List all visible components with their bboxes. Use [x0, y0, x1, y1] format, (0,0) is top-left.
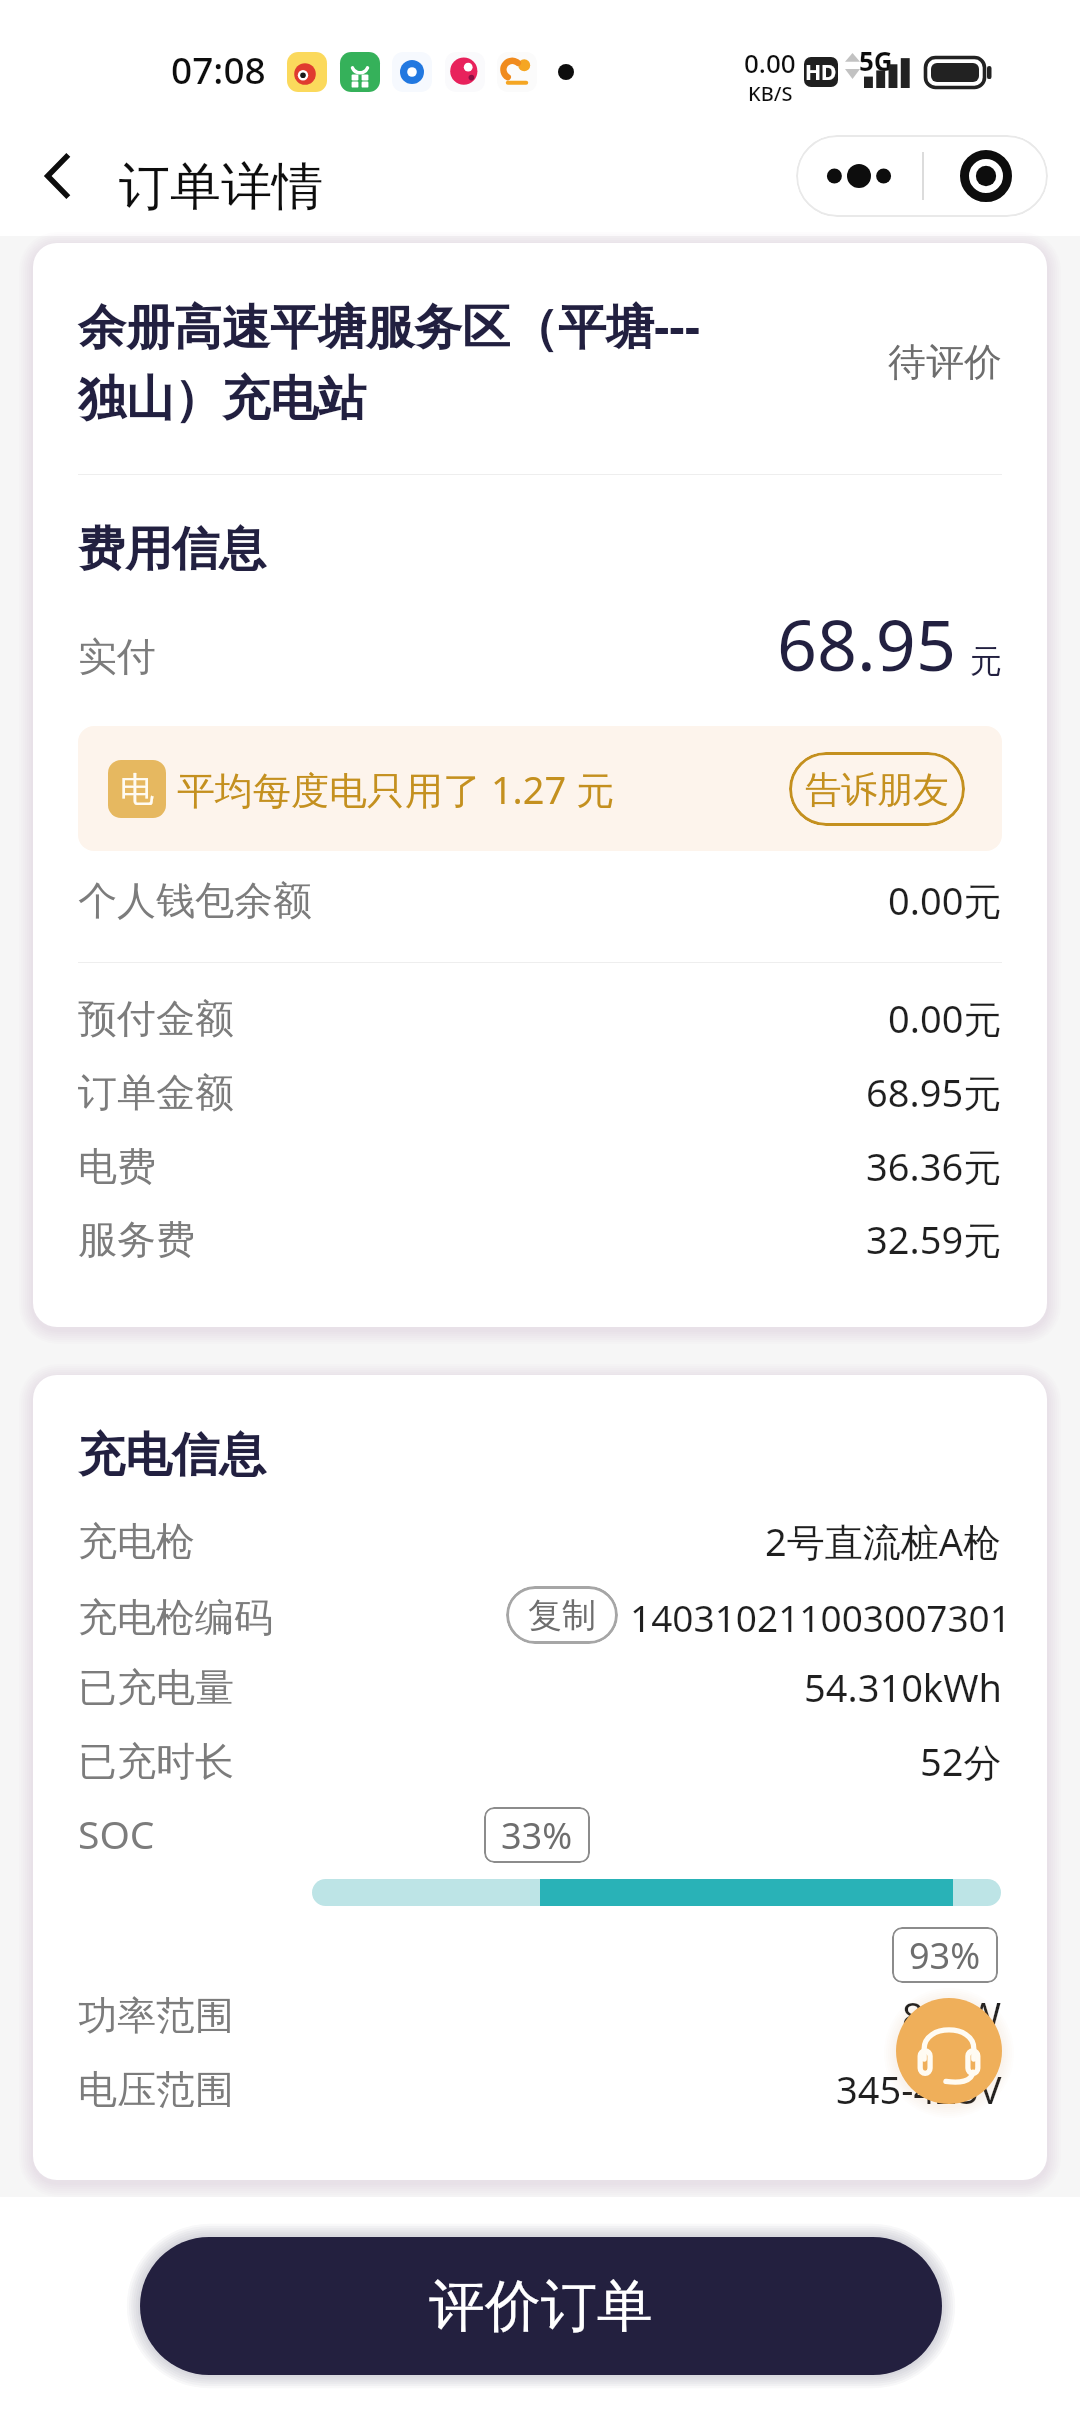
button[interactable]: 告诉朋友: [789, 752, 965, 826]
button[interactable]: Close mini program: [924, 135, 1048, 217]
staticText: 实付: [78, 632, 156, 681]
staticText: 复制: [528, 1594, 596, 1637]
staticText: 服务费: [78, 1215, 195, 1264]
staticText: 已充电量: [78, 1663, 234, 1712]
staticText: 告诉朋友: [805, 767, 949, 812]
staticText: 充电枪: [78, 1517, 195, 1566]
staticText: 2号直流桩A枪: [765, 1515, 1002, 1567]
button[interactable]: 评价订单: [140, 2237, 942, 2375]
staticText: 待评价: [888, 338, 1002, 386]
staticText: 电压范围: [78, 2065, 234, 2114]
staticText: 345-425V: [836, 2063, 1002, 2115]
staticText: 评价订单: [429, 2271, 653, 2342]
staticText: 68.95: [777, 596, 956, 691]
staticText: SOC: [78, 1807, 155, 1860]
staticText: 93%: [909, 1931, 981, 1980]
staticText: 预付金额: [78, 994, 234, 1043]
staticText: 已充时长: [78, 1737, 234, 1786]
staticText: 0.00元: [888, 992, 1002, 1044]
button[interactable]: Back: [22, 140, 94, 212]
button[interactable]: 复制: [506, 1586, 618, 1644]
staticText: 费用信息: [78, 520, 266, 579]
staticText: 订单详情: [119, 155, 323, 219]
staticText: 140310211003007301: [630, 1592, 1011, 1642]
staticText: 功率范围: [78, 1991, 234, 2040]
staticText: 个人钱包余额: [78, 876, 312, 925]
staticText: 68.95元: [866, 1066, 1002, 1118]
button[interactable]: Customer service: [896, 1998, 1002, 2104]
staticText: 5G: [859, 43, 893, 78]
staticText: 平均每度电只用了 1.27 元: [177, 763, 615, 815]
staticText: 36.36元: [866, 1140, 1002, 1192]
staticText: 余册高速平塘服务区（平塘---独山）充电站: [78, 293, 728, 429]
staticText: 电费: [78, 1142, 156, 1191]
button[interactable]: More options: [796, 135, 922, 217]
staticText: 电: [120, 768, 154, 811]
staticText: 54.310kWh: [804, 1661, 1002, 1713]
staticText: 0.00元: [888, 874, 1002, 926]
staticText: 33%: [501, 1811, 573, 1860]
staticText: 订单金额: [78, 1068, 234, 1117]
staticText: 0.00: [744, 45, 796, 80]
staticText: 充电信息: [78, 1426, 266, 1485]
staticText: 充电枪编码: [78, 1593, 273, 1642]
staticText: HD: [805, 58, 837, 87]
staticText: KB/S: [748, 80, 793, 107]
staticText: 07:08: [171, 44, 266, 94]
staticText: 元: [970, 641, 1002, 681]
staticText: 32.59元: [866, 1213, 1002, 1265]
staticText: 52分: [920, 1735, 1002, 1787]
staticText: 80kW: [902, 1989, 1002, 2041]
